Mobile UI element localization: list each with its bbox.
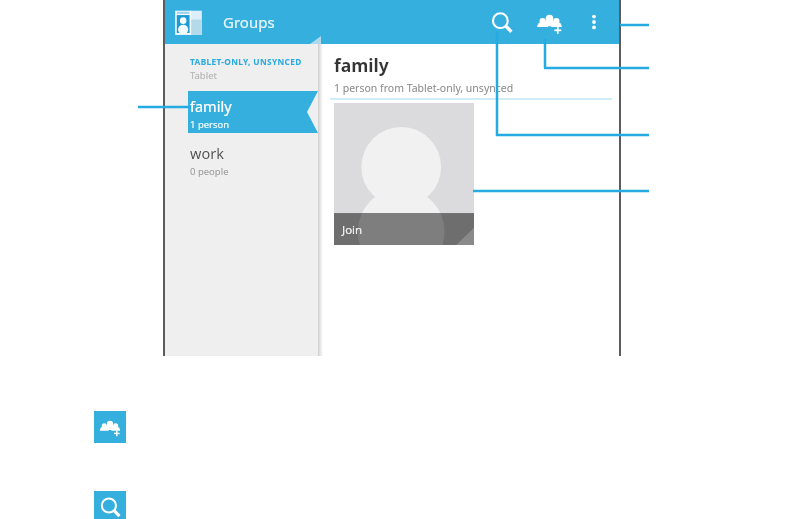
staticText: TABLET-ONLY, UNSYNCED: [190, 56, 302, 67]
button[interactable]: work: [164, 143, 318, 184]
staticText: family: [334, 53, 389, 77]
button[interactable]: Contacts: [173, 7, 204, 38]
button[interactable]: More options: [577, 5, 611, 39]
staticText: family: [190, 96, 232, 116]
staticText: 0 people: [190, 165, 229, 178]
staticText: 1 person from Tablet-only, unsynced: [334, 81, 514, 95]
staticText: work: [190, 143, 224, 163]
button[interactable]: Contact, Join: [334, 103, 474, 245]
button[interactable]: Search: [94, 491, 126, 519]
button[interactable]: family: [164, 91, 318, 133]
button[interactable]: Create group: [94, 411, 126, 443]
button[interactable]: Create group: [529, 2, 569, 42]
staticText: 1 person: [190, 118, 230, 131]
staticText: Join: [342, 222, 363, 238]
staticText: Groups: [223, 12, 275, 32]
staticText: Tablet: [190, 69, 217, 82]
button[interactable]: Search: [481, 2, 521, 42]
